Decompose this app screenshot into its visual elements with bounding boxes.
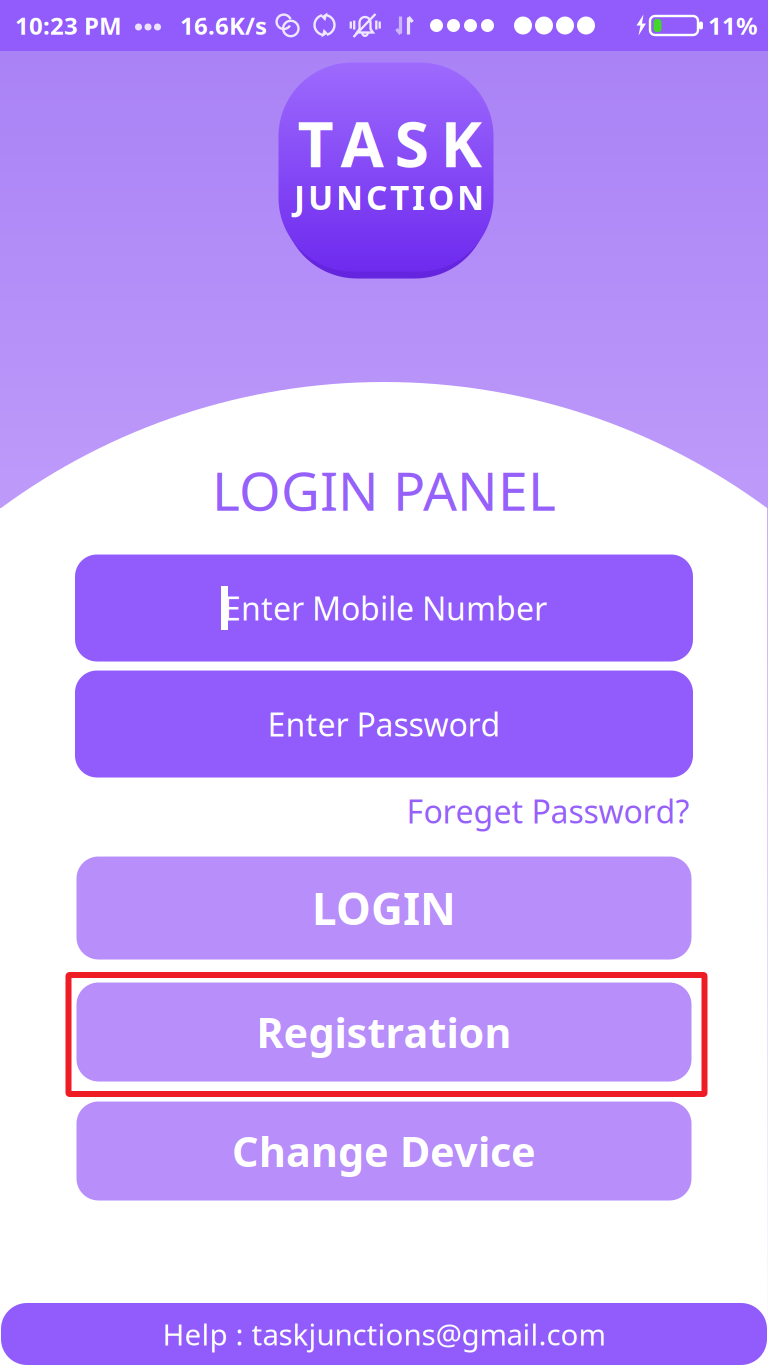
staticText: Help : taskjunctions@gmail.com bbox=[162, 1314, 605, 1353]
staticText: Enter Password bbox=[267, 703, 500, 745]
staticText: LOGIN bbox=[312, 879, 456, 937]
staticText: Registration bbox=[256, 1005, 511, 1059]
button[interactable]: LOGIN bbox=[76, 856, 691, 959]
staticText: TASK bbox=[297, 101, 482, 185]
button[interactable]: Enter Mobile Number bbox=[75, 554, 693, 661]
button[interactable]: Help : taskjunctions@gmail.com bbox=[1, 1303, 767, 1365]
button[interactable]: Registration bbox=[76, 982, 691, 1081]
staticText: JUNCTION bbox=[294, 175, 484, 219]
staticText: 10:23 PM bbox=[15, 10, 122, 41]
staticText: 11% bbox=[708, 10, 758, 41]
staticText: LOGIN PANEL bbox=[212, 455, 556, 525]
staticText: Foreget Password? bbox=[406, 790, 689, 832]
button[interactable]: Change Device bbox=[76, 1101, 691, 1200]
button[interactable]: Foreget Password? bbox=[398, 784, 697, 838]
button[interactable]: Enter Password bbox=[75, 670, 693, 777]
staticText: 16.6K/s bbox=[180, 10, 267, 41]
staticText: Change Device bbox=[232, 1124, 536, 1178]
staticText: Enter Mobile Number bbox=[223, 587, 547, 629]
